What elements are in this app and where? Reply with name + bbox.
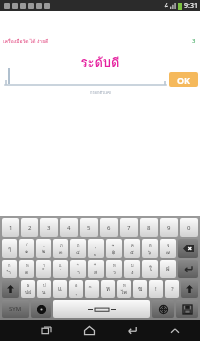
staticText: 3 xyxy=(47,224,51,232)
button[interactable]: 5 xyxy=(80,218,98,237)
button[interactable]: ๅ xyxy=(36,260,51,278)
button[interactable]: ? xyxy=(165,280,179,298)
staticText: า xyxy=(77,268,80,276)
staticText: OK xyxy=(177,74,191,86)
button[interactable]: ป xyxy=(37,280,51,298)
button[interactable]: ฆ xyxy=(133,280,147,298)
staticText: ? xyxy=(171,285,174,293)
button[interactable]: key xyxy=(2,280,19,298)
button[interactable]: 1 xyxy=(2,218,19,237)
staticText: ก xyxy=(8,262,11,268)
button[interactable]: ห xyxy=(101,280,115,298)
button[interactable]: SYM xyxy=(2,300,29,318)
button[interactable]: Back xyxy=(118,320,146,341)
button[interactable]: ผ xyxy=(21,280,35,298)
button[interactable]: ท xyxy=(106,260,122,278)
button[interactable]: ิ xyxy=(70,260,86,278)
button[interactable]: ื xyxy=(88,260,104,278)
staticText: ใ xyxy=(149,264,152,274)
staticText: จ xyxy=(167,242,170,248)
button[interactable]: ! xyxy=(149,280,163,298)
staticText: ๕ xyxy=(130,248,134,256)
button[interactable]: Recents xyxy=(32,320,60,341)
button[interactable]: จ xyxy=(160,239,176,258)
button[interactable]: key xyxy=(181,280,198,298)
button[interactable]: 9 xyxy=(160,218,178,237)
button[interactable]: key xyxy=(176,300,198,318)
staticText: ค xyxy=(131,242,134,248)
button[interactable]: key xyxy=(31,300,51,318)
staticText: 9:31 xyxy=(184,1,198,11)
button[interactable]: _ xyxy=(36,239,51,258)
staticText: 7 xyxy=(127,224,131,232)
button[interactable]: ค xyxy=(124,239,140,258)
button[interactable]: 6 xyxy=(100,218,118,237)
staticText: ส xyxy=(94,268,98,276)
staticText: ง xyxy=(131,268,134,276)
staticText: 9 xyxy=(167,224,171,232)
staticText: ด xyxy=(25,268,29,276)
button[interactable]: / xyxy=(19,239,34,258)
button[interactable]: key xyxy=(152,300,174,318)
button[interactable]: แ xyxy=(53,260,68,278)
staticText: SYM xyxy=(9,305,22,313)
button[interactable]: 8 xyxy=(140,218,158,237)
button[interactable]: ึ xyxy=(106,239,122,258)
button[interactable]: แ xyxy=(53,280,67,298)
staticText: ต xyxy=(149,242,152,248)
button[interactable]: ท xyxy=(117,280,131,298)
staticText: 4 xyxy=(67,224,71,232)
staticText: ท xyxy=(113,262,116,268)
button[interactable]: ก xyxy=(2,260,17,278)
staticText: แ xyxy=(59,262,62,268)
staticText: ภ xyxy=(60,242,63,248)
staticText: ถ xyxy=(77,242,80,248)
staticText: ๓ xyxy=(59,248,63,256)
button[interactable]: ิ xyxy=(85,280,99,298)
button[interactable]: ุ xyxy=(88,239,104,258)
button[interactable]: 0 xyxy=(180,218,198,237)
staticText: ๑ xyxy=(25,247,29,255)
button[interactable]: ห xyxy=(19,260,34,278)
staticText: ฝ xyxy=(166,264,170,274)
staticText: ระดับดี xyxy=(80,52,120,73)
staticText: 1 xyxy=(9,224,13,232)
button[interactable]: ภ xyxy=(53,239,68,258)
button[interactable]: ฝ xyxy=(160,260,176,278)
staticText: ๗ xyxy=(166,248,170,256)
button[interactable]: ม xyxy=(124,260,140,278)
staticText: 3 xyxy=(192,37,196,45)
staticText: กรอกตัวเลข xyxy=(90,89,111,95)
staticText: ๒ xyxy=(42,247,46,255)
staticText: ห xyxy=(26,262,29,268)
button[interactable]: 7 xyxy=(120,218,138,237)
staticText: เครื่องมือวัด ได้ ง่ายดี xyxy=(3,37,49,45)
button[interactable]: OK xyxy=(169,72,198,87)
button[interactable]: key xyxy=(178,239,198,258)
button[interactable]: key xyxy=(178,260,198,278)
staticText: / xyxy=(26,242,28,247)
button[interactable]: 4 xyxy=(60,218,78,237)
staticText: 5 xyxy=(87,224,91,232)
staticText: ! xyxy=(155,285,157,293)
button[interactable]: 2 xyxy=(21,218,38,237)
staticText: ห xyxy=(106,284,110,294)
button[interactable]: ต xyxy=(142,239,158,258)
button[interactable]: Hide keyboard xyxy=(161,320,189,341)
staticText: ป xyxy=(43,282,46,288)
staticText: ๔ xyxy=(76,248,80,256)
staticText: แ xyxy=(58,284,62,294)
button[interactable]: ใ xyxy=(142,260,158,278)
button[interactable]: ถ xyxy=(70,239,86,258)
staticText: ว xyxy=(113,268,116,276)
staticText: 6 xyxy=(107,224,111,232)
staticText: 2 xyxy=(28,224,32,232)
staticText: น xyxy=(42,288,46,296)
button[interactable]: Home xyxy=(75,320,103,341)
staticText: ๆ xyxy=(8,244,12,254)
button[interactable]: อ xyxy=(69,280,83,298)
button[interactable]: key xyxy=(53,300,150,318)
staticText: ปฝ xyxy=(25,288,32,296)
button[interactable]: ๆ xyxy=(2,239,17,258)
button[interactable]: 3 xyxy=(40,218,58,237)
